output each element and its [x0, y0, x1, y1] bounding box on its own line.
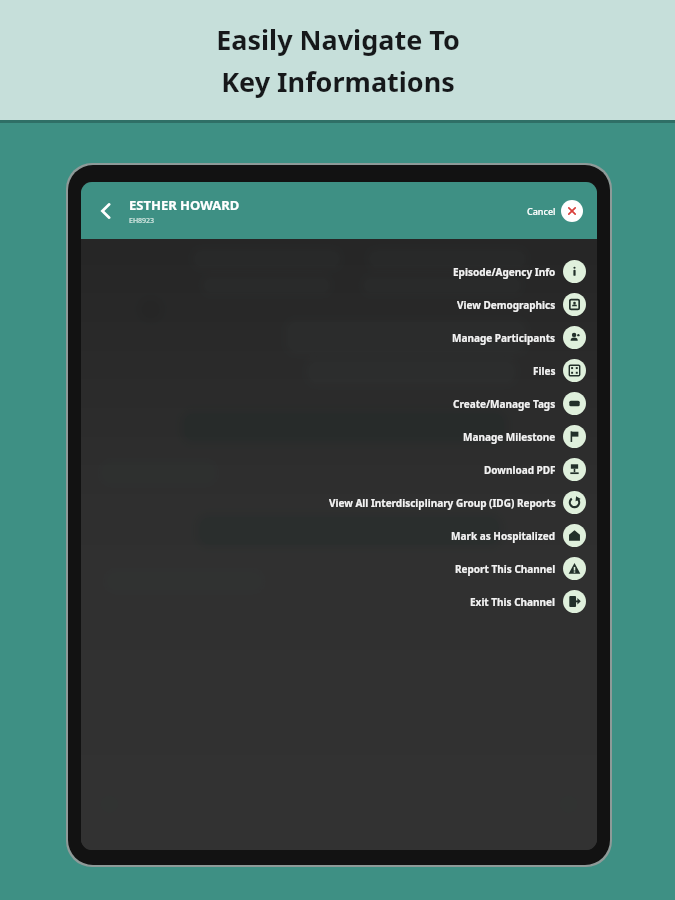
staticText: View Demographics — [457, 298, 556, 312]
button[interactable]: Exit This Channel — [468, 585, 588, 618]
button[interactable]: Report This Channel — [453, 552, 588, 585]
button[interactable]: Create/Manage Tags — [451, 387, 588, 420]
button[interactable]: Manage Milestone — [461, 420, 588, 453]
button[interactable]: Cancel — [523, 196, 587, 226]
staticText: Download PDF — [484, 463, 556, 477]
staticText: Cancel — [527, 205, 556, 217]
staticText: View All Interdisciplinary Group (IDG) R… — [329, 496, 556, 510]
staticText: Create/Manage Tags — [453, 397, 556, 411]
staticText: Manage Participants — [452, 331, 556, 345]
staticText: Episode/Agency Info — [453, 265, 556, 279]
staticText: EH8923 — [129, 216, 155, 226]
staticText: Report This Channel — [455, 562, 556, 576]
staticText: Easily Navigate To — [216, 21, 460, 58]
button[interactable]: Back — [89, 194, 123, 228]
staticText: Exit This Channel — [470, 595, 556, 609]
button[interactable]: Manage Participants — [450, 321, 588, 354]
button[interactable]: Files — [531, 354, 588, 387]
button[interactable]: Mark as Hospitalized — [449, 519, 588, 552]
button[interactable]: Episode/Agency Info — [451, 255, 588, 288]
staticText: ESTHER HOWARD — [129, 196, 240, 214]
staticText: Key Informations — [221, 63, 455, 100]
staticText: Files — [533, 364, 556, 378]
staticText: Mark as Hospitalized — [451, 529, 556, 543]
button[interactable]: Download PDF — [482, 453, 588, 486]
staticText: Manage Milestone — [463, 430, 556, 444]
button[interactable]: View All Interdisciplinary Group (IDG) R… — [327, 486, 588, 519]
button[interactable]: View Demographics — [455, 288, 588, 321]
